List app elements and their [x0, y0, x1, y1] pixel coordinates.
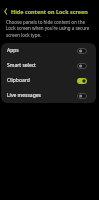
staticText: Apps	[7, 47, 19, 54]
button[interactable]: Back	[0, 6, 11, 17]
button[interactable]: Smart select	[1, 58, 96, 73]
button[interactable]: Live messages	[1, 88, 96, 103]
staticText: Live messages	[7, 92, 41, 99]
button[interactable]: Clipboard	[1, 73, 96, 88]
staticText: Choose panels to hide content on the Loc…	[6, 19, 95, 39]
staticText: Clipboard	[7, 77, 30, 84]
staticText: Smart select	[7, 62, 36, 69]
staticText: Hide content on Lock screen	[11, 8, 88, 15]
button[interactable]: Apps	[1, 43, 96, 58]
